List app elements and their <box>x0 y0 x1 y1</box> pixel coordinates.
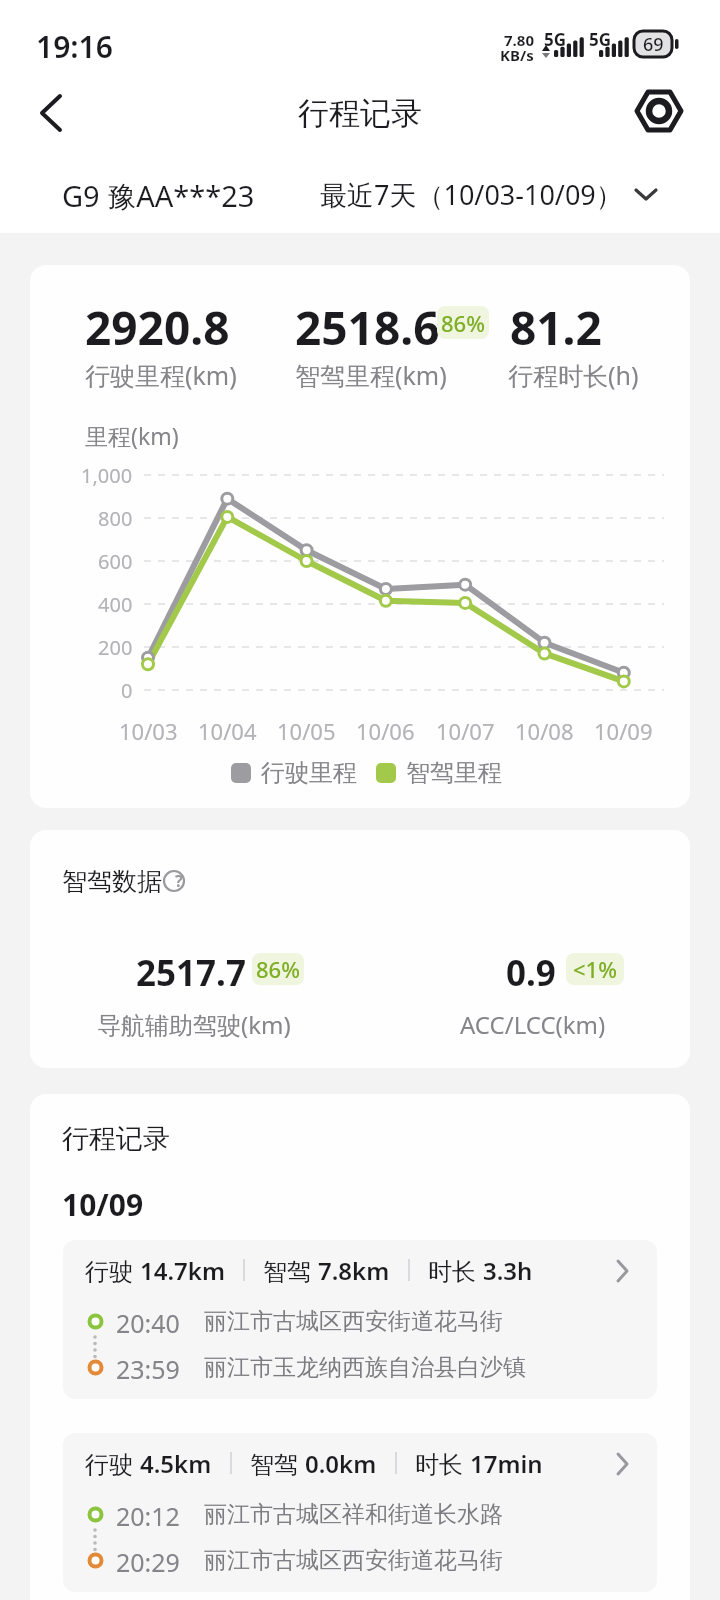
staticText: 0.9 <box>506 949 556 997</box>
staticText: 10/09 <box>594 716 653 746</box>
staticText: 2518.6 <box>295 296 440 359</box>
staticText: 0.0km <box>305 1447 377 1479</box>
button[interactable] <box>630 84 688 140</box>
staticText: 86% <box>441 308 485 338</box>
staticText: 时长 <box>415 1447 470 1479</box>
staticText: 23:59 <box>116 1352 180 1382</box>
staticText: 2517.7 <box>136 949 246 997</box>
staticText: 行驶里程 <box>261 758 357 788</box>
staticText: 行驶里程(km) <box>85 358 237 392</box>
staticText: 丽江市古城区祥和街道长水路 <box>204 1500 503 1529</box>
staticText: 800 <box>98 505 133 532</box>
staticText: 20:12 <box>116 1499 180 1529</box>
staticText: 10/05 <box>277 716 336 746</box>
staticText: 14.7km <box>140 1254 225 1286</box>
staticText: 19:16 <box>36 26 113 67</box>
staticText: 智驾数据 <box>62 866 162 897</box>
staticText: 10/08 <box>515 716 574 746</box>
button[interactable]: 最近7天（10/03-10/09） <box>320 168 659 220</box>
staticText: 20:29 <box>116 1545 180 1575</box>
staticText: 10/06 <box>356 716 415 746</box>
staticText: 丽江市古城区西安街道花马街 <box>204 1307 503 1336</box>
staticText: 智驾 <box>250 1447 305 1479</box>
staticText: 智驾里程 <box>406 758 502 788</box>
staticText: 4.5km <box>140 1447 212 1479</box>
staticText: 行程记录 <box>62 1122 170 1156</box>
staticText: 行驶 <box>85 1447 140 1479</box>
staticText: 行驶 <box>85 1254 140 1286</box>
staticText: 20:40 <box>116 1306 180 1336</box>
staticText: 10/03 <box>119 716 178 746</box>
staticText: 最近7天（10/03-10/09） <box>320 176 623 213</box>
staticText: 导航辅助驾驶(km) <box>97 1008 291 1041</box>
staticText: 行程时长(h) <box>508 358 639 392</box>
staticText: 400 <box>98 591 133 618</box>
staticText: 智驾里程(km) <box>295 358 447 392</box>
staticText: G9 豫AA***23 <box>62 176 255 216</box>
button[interactable]: 行驶 <box>63 1240 657 1399</box>
staticText: 0 <box>121 677 133 704</box>
staticText: 69 <box>643 32 664 57</box>
staticText: 智驾 <box>263 1254 318 1286</box>
staticText: 81.2 <box>510 296 602 359</box>
staticText: ACC/LCC(km) <box>460 1008 606 1041</box>
staticText: 3.3h <box>483 1254 533 1286</box>
staticText: 86% <box>256 954 300 984</box>
staticText: 10/04 <box>198 716 257 746</box>
staticText: 7.8km <box>318 1254 390 1286</box>
staticText: ? <box>175 870 183 892</box>
staticText: 600 <box>98 548 133 575</box>
button[interactable] <box>26 87 78 139</box>
staticText: 10/07 <box>436 716 495 746</box>
staticText: 200 <box>98 634 133 661</box>
button[interactable]: 行驶 <box>63 1433 657 1592</box>
staticText: 2920.8 <box>85 296 230 359</box>
staticText: 5G <box>589 28 612 51</box>
button[interactable] <box>162 869 186 893</box>
staticText: 行程记录 <box>298 94 422 133</box>
staticText: 10/09 <box>62 1184 144 1225</box>
staticText: 5G <box>544 28 567 51</box>
staticText: 7.80 <box>504 30 534 50</box>
staticText: 丽江市古城区西安街道花马街 <box>204 1546 503 1575</box>
staticText: 时长 <box>428 1254 483 1286</box>
staticText: 1,000 <box>81 462 133 489</box>
staticText: 丽江市玉龙纳西族自治县白沙镇 <box>204 1353 526 1382</box>
staticText: <1% <box>573 954 617 984</box>
staticText: KB/s <box>500 45 534 65</box>
staticText: 里程(km) <box>85 420 179 451</box>
staticText: 17min <box>470 1447 543 1479</box>
